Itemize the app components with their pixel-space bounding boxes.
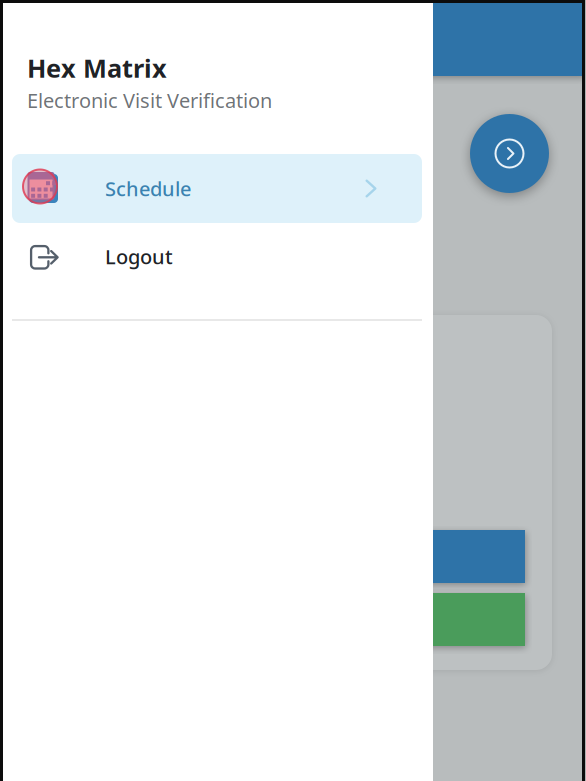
- button[interactable]: Primary action: [61, 530, 525, 583]
- button[interactable]: Secondary action: [61, 593, 525, 646]
- staticText: Hex Matrix: [27, 51, 167, 85]
- staticText: Electronic Visit Verification: [27, 87, 272, 114]
- staticText: Logout: [105, 243, 173, 270]
- button[interactable]: Schedule: [12, 154, 422, 223]
- button[interactable]: Logout: [12, 222, 422, 291]
- staticText: Schedule: [105, 175, 191, 202]
- button[interactable]: Next: [470, 114, 549, 193]
